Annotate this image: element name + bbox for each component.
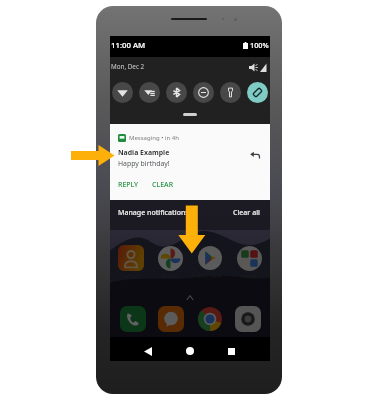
button[interactable]: Manage notifications	[110, 208, 189, 223]
staticText: Nadia Example	[118, 148, 170, 157]
button[interactable]: CLEAR	[152, 180, 174, 190]
staticText: Play Store	[198, 273, 222, 280]
button[interactable]: Bluetooth	[166, 82, 187, 103]
button[interactable]: Reply	[248, 148, 262, 162]
button[interactable]: Recents	[223, 343, 239, 359]
button[interactable]: Photos	[157, 245, 183, 280]
button[interactable]: Auto-rotate	[247, 82, 268, 103]
button[interactable]: Back	[140, 343, 156, 359]
staticText: Photos	[162, 273, 179, 280]
button[interactable]: Camera	[234, 305, 261, 332]
button[interactable]: Do not disturb	[193, 82, 214, 103]
button[interactable]: Wi-Fi	[112, 82, 133, 103]
button[interactable]: REPLY	[118, 180, 139, 190]
button[interactable]: Messages	[157, 305, 184, 332]
staticText: 100%	[250, 40, 269, 50]
staticText: Google	[241, 273, 258, 280]
button[interactable]: Clear all	[233, 208, 270, 223]
button[interactable]: Contacts	[118, 245, 144, 280]
button[interactable]: Messaging • in 4h	[110, 124, 270, 200]
button[interactable]: Phone	[119, 305, 146, 332]
button[interactable]: Play Store	[197, 245, 223, 280]
button[interactable]: Home	[182, 343, 198, 359]
button[interactable]: Google	[236, 245, 262, 280]
button[interactable]: Chrome	[196, 305, 223, 332]
button[interactable]: Hotspot	[139, 82, 160, 103]
staticText: 11:00 AM	[111, 40, 146, 51]
staticText: Happy birthday!	[118, 159, 170, 168]
staticText: Mon, Dec 2	[111, 62, 145, 71]
staticText: Messaging • in 4h	[129, 134, 179, 142]
button[interactable]: Flashlight	[220, 82, 241, 103]
